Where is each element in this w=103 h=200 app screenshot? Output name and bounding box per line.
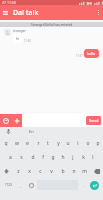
staticText: s (20, 154, 23, 161)
staticText: a (9, 154, 12, 161)
staticText: ?123 (5, 183, 12, 187)
staticText: b (61, 168, 65, 175)
button[interactable]: g (48, 150, 58, 164)
staticText: v (50, 168, 53, 175)
button[interactable]: Voice input (5, 128, 12, 135)
staticText: n (72, 168, 76, 175)
staticText: 47 11:50 (2, 0, 16, 5)
button[interactable]: j (68, 150, 78, 164)
button[interactable]: v (46, 164, 57, 178)
button[interactable]: ?123 (0, 178, 16, 192)
button[interactable]: m (79, 164, 90, 178)
button[interactable]: Open navigation menu (0, 5, 11, 20)
button[interactable]: n (68, 164, 79, 178)
staticText: z (17, 168, 20, 175)
staticText: En (29, 129, 34, 134)
staticText: e (26, 140, 29, 147)
button[interactable]: x (24, 164, 35, 178)
staticText: q (4, 140, 8, 147)
staticText: , (20, 183, 22, 188)
button[interactable]: Add attachment (11, 114, 22, 127)
staticText: o (86, 140, 90, 147)
button[interactable]: Shift (0, 164, 13, 178)
button[interactable]: , (16, 178, 26, 192)
button[interactable]: f (38, 150, 48, 164)
staticText: f (42, 154, 44, 161)
staticText: m (82, 168, 87, 175)
button[interactable]: l (88, 150, 98, 164)
button[interactable]: Emoji (26, 178, 36, 192)
staticText: hi (16, 36, 20, 41)
button[interactable]: b (57, 164, 68, 178)
button[interactable]: y (53, 136, 63, 150)
staticText: i (77, 140, 79, 147)
staticText: . (84, 183, 86, 188)
button[interactable]: a (5, 150, 16, 164)
button[interactable]: z (13, 164, 24, 178)
button[interactable]: Send (86, 116, 101, 125)
staticText: w (15, 140, 19, 147)
staticText: h (61, 154, 65, 161)
staticText: 11:50 (24, 39, 31, 43)
staticText: Dal talk (13, 8, 39, 18)
button[interactable]: Enter (90, 181, 99, 190)
staticText: c (39, 168, 42, 175)
button[interactable]: w (11, 136, 22, 150)
button[interactable]: s (16, 150, 27, 164)
button[interactable]: k (78, 150, 88, 164)
button[interactable]: q (0, 136, 11, 150)
button[interactable]: i (73, 136, 83, 150)
button[interactable]: h (58, 150, 68, 164)
staticText: u (66, 140, 70, 147)
staticText: 11:51 (76, 54, 83, 58)
staticText: r (37, 140, 40, 147)
button[interactable]: Emoticon (0, 114, 11, 127)
button[interactable]: t (43, 136, 53, 150)
staticText: d (31, 154, 35, 161)
button[interactable]: More options (93, 5, 103, 20)
button[interactable]: p (93, 136, 103, 150)
staticText: y (57, 140, 60, 147)
button[interactable]: u (63, 136, 73, 150)
button[interactable]: d (27, 150, 38, 164)
staticText: Send (89, 118, 99, 123)
staticText: t (47, 140, 49, 147)
staticText: Stranger(Unlia) has entered (31, 23, 73, 27)
staticText: j (72, 154, 74, 161)
staticText: stranger (13, 29, 26, 33)
button[interactable]: e (22, 136, 33, 150)
staticText: l (92, 154, 94, 161)
button[interactable]: o (83, 136, 93, 150)
staticText: g (51, 154, 55, 161)
staticText: x (28, 168, 31, 175)
button[interactable]: Backspace (90, 164, 103, 178)
staticText: p (96, 140, 100, 147)
staticText: k (82, 154, 85, 161)
button[interactable]: c (35, 164, 46, 178)
staticText: hello (87, 51, 96, 56)
button[interactable]: r (33, 136, 43, 150)
